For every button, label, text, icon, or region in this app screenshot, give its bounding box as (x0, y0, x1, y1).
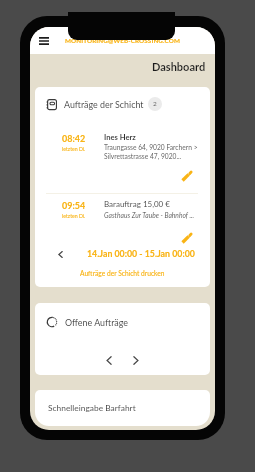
staticText: Gasthaus Zur Taube - Bahnhof ... (104, 211, 195, 219)
button[interactable]: 09:54 (35, 194, 210, 244)
staticText: letzten Di. (62, 146, 86, 152)
staticText: Barauftrag 15,00 € (104, 199, 170, 209)
staticText: 08:42 (62, 133, 86, 144)
staticText: Dashboard (152, 60, 206, 73)
staticText: Ines Herz (104, 132, 136, 141)
button[interactable]: 08:42 (35, 128, 210, 193)
staticText: Offene Aufträge (65, 317, 128, 328)
staticText: Traungasse 64, 9020 Farchern > (104, 143, 198, 151)
staticText: letzten Di. (62, 213, 86, 219)
staticText: 09:54 (62, 200, 86, 211)
staticText: 2 (153, 100, 157, 108)
staticText: Aufträge der Schicht (64, 99, 144, 110)
staticText: Schnelleingabe Barfahrt (48, 403, 136, 413)
button[interactable]: Edit (178, 230, 194, 246)
button[interactable]: Menu (35, 32, 52, 49)
staticText: MONITORING@WEB-CROSSING.COM (65, 37, 181, 45)
button[interactable]: Schnelleingabe Barfahrt (35, 390, 210, 426)
button[interactable]: Next (129, 353, 143, 367)
button[interactable]: Aufträge der Schicht drucken (76, 267, 169, 279)
staticText: 14.Jan 00:00 - 15.Jan 00:00 (87, 248, 195, 259)
button[interactable]: Previous (102, 353, 116, 367)
button[interactable]: Edit (178, 168, 194, 184)
staticText: Silvrettastrasse 47, 9020... (104, 152, 182, 160)
button[interactable]: Previous shift (53, 247, 67, 261)
